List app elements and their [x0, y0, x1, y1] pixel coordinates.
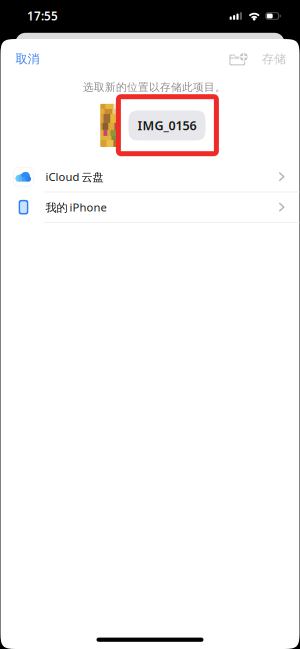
staticText: iCloud 云盘 — [45, 169, 103, 184]
button[interactable]: 新建文件夹 — [225, 47, 250, 71]
button[interactable]: iCloud 云盘 — [0, 162, 299, 192]
button[interactable]: 存储 — [260, 46, 288, 71]
staticText: 选取新的位置以存储此项目。 — [83, 80, 226, 94]
button[interactable]: 取消 — [13, 46, 41, 71]
staticText: 我的 iPhone — [45, 200, 106, 215]
staticText: IMG_0156 — [137, 117, 196, 134]
staticText: 取消 — [15, 51, 39, 66]
button[interactable]: 我的 iPhone — [0, 192, 299, 223]
staticText: 存储 — [262, 51, 286, 66]
staticText: 17:55 — [27, 8, 58, 24]
